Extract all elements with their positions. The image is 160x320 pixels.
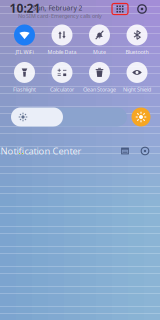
button[interactable]: Edit tiles [112, 3, 128, 14]
staticText: Notification Center [0, 145, 81, 157]
button[interactable]: Settings [136, 3, 148, 15]
button[interactable]: JTL WiFi [6, 23, 43, 57]
staticText: Mute [93, 48, 106, 56]
staticText: No SIM card · Emergency calls only [18, 12, 102, 20]
staticText: JTL WiFi [15, 48, 33, 56]
button[interactable]: Bluetooth [118, 23, 155, 57]
staticText: Clean Storage [83, 86, 116, 93]
button[interactable]: Notification layout [120, 146, 130, 156]
button[interactable]: Clean Storage [81, 60, 118, 94]
staticText: 10:21 [9, 0, 40, 16]
staticText: Bluetooth [125, 48, 148, 56]
button[interactable]: Notification settings [140, 146, 150, 156]
button[interactable]: Night Shield [118, 60, 155, 94]
staticText: Flashlight [13, 86, 36, 93]
button[interactable]: Mobile Data [43, 23, 80, 57]
staticText: Mobile Data [47, 48, 76, 56]
staticText: Sun, February 2 [32, 4, 82, 12]
button[interactable]: Auto brightness [131, 107, 150, 126]
button[interactable]: Flashlight [6, 60, 43, 94]
staticText: Night Shield [123, 86, 151, 93]
staticText: Calculator [50, 86, 74, 93]
button[interactable]: Brightness [11, 107, 127, 126]
button[interactable]: Mute [81, 23, 118, 57]
button[interactable]: Calculator [43, 60, 80, 94]
